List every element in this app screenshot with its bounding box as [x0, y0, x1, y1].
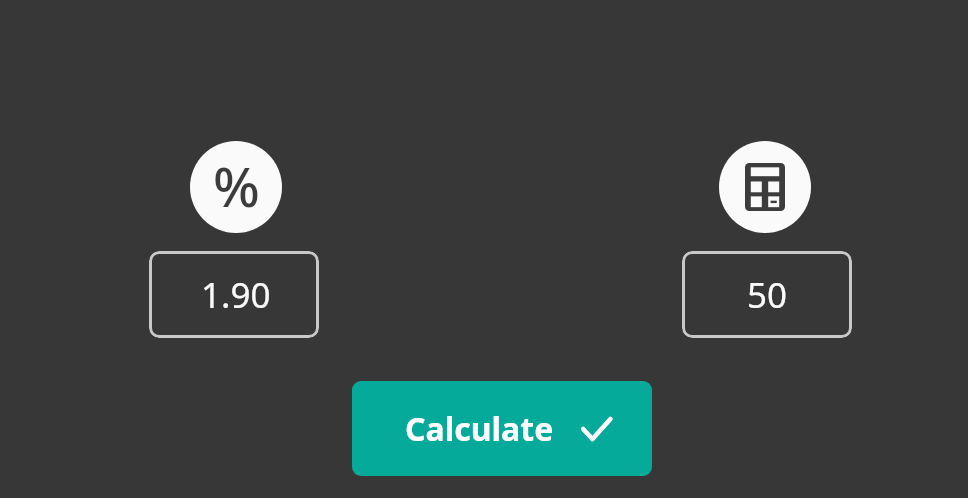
button[interactable]: Calculator — [719, 141, 811, 233]
button[interactable]: Calculate — [352, 381, 652, 476]
staticText: % — [213, 148, 260, 223]
button[interactable]: Percent — [190, 141, 282, 233]
staticText: Calculate — [405, 407, 554, 451]
staticText: 1.90 — [201, 271, 271, 319]
staticText: 50 — [747, 271, 788, 319]
button[interactable]: 1.90 — [149, 251, 319, 338]
button[interactable]: 50 — [682, 251, 852, 338]
